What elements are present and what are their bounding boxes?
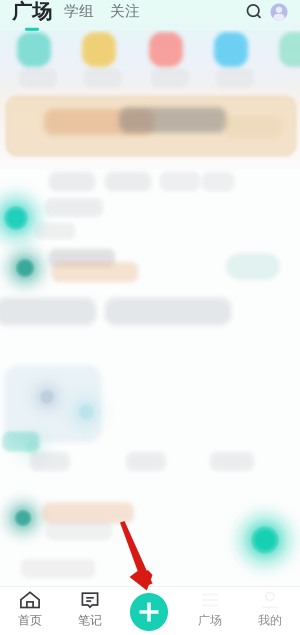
staticText: 学组 (64, 2, 94, 20)
staticText: 关注 (110, 2, 140, 20)
button[interactable]: 学组 (56, 1, 102, 21)
button[interactable]: 我的 (240, 591, 300, 631)
button[interactable]: 广场 (8, 1, 56, 29)
button[interactable]: 笔记 (60, 591, 120, 631)
staticText: 首页 (18, 613, 42, 628)
button[interactable]: Search (244, 1, 266, 23)
button[interactable]: 广场 (180, 591, 240, 631)
staticText: 我的 (258, 613, 282, 628)
button[interactable]: Profile (266, 1, 292, 23)
staticText: 笔记 (78, 613, 102, 628)
button[interactable]: Create post (130, 593, 168, 631)
button[interactable]: 关注 (102, 1, 148, 21)
button[interactable]: 首页 (0, 591, 60, 631)
staticText: 广场 (198, 613, 222, 628)
staticText: 广场 (12, 0, 52, 24)
